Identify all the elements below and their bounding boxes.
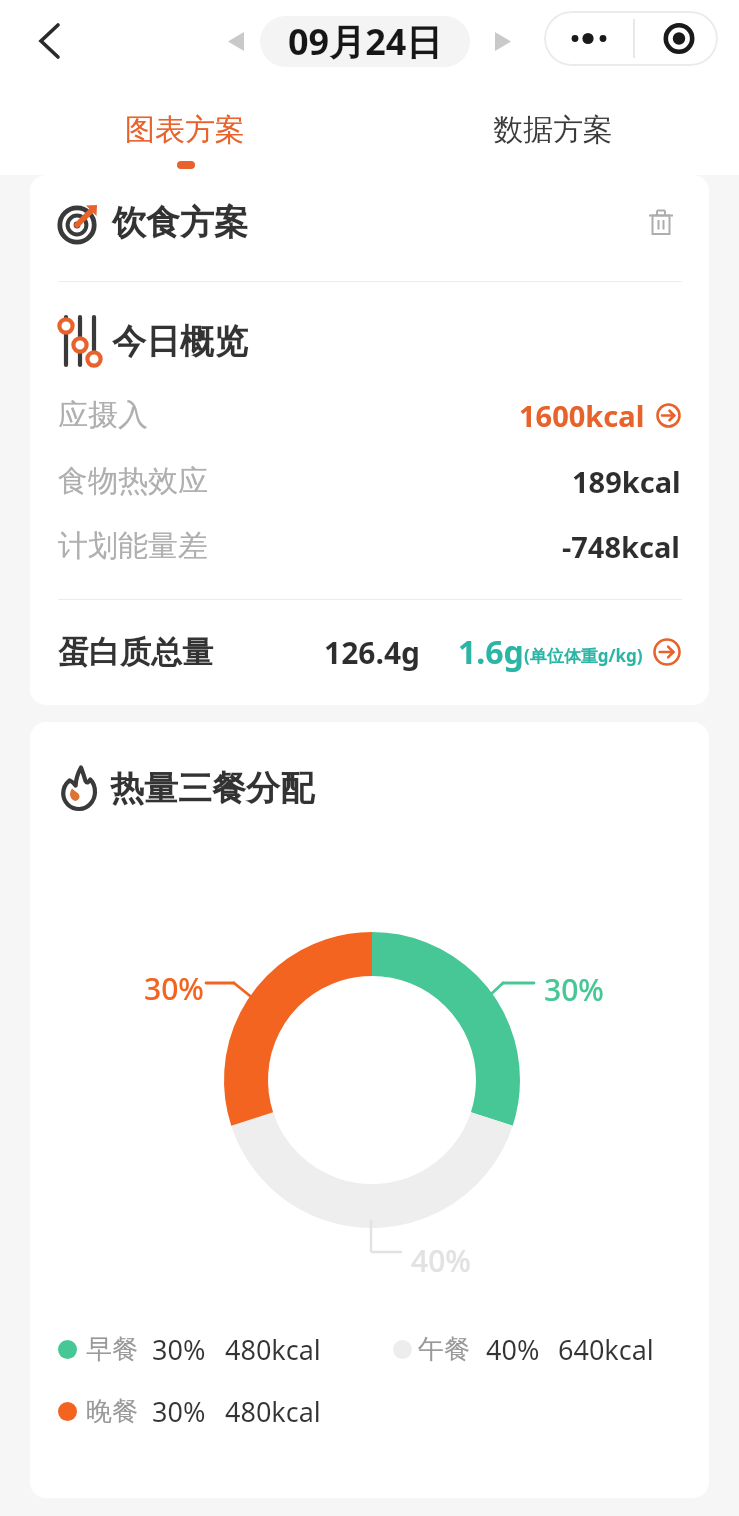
- staticText: 应摄入: [58, 396, 148, 434]
- staticText: 蛋白质总量: [58, 633, 213, 672]
- staticText: 计划能量差: [58, 527, 208, 565]
- button[interactable]: 应摄入: [58, 390, 681, 440]
- staticText: 189kcal: [572, 462, 681, 501]
- button[interactable]: 图表方案: [65, 103, 305, 157]
- staticText: 480kcal: [225, 1331, 321, 1367]
- staticText: 图表方案: [125, 111, 245, 149]
- staticText: (单位体重g/kg): [524, 644, 643, 667]
- staticText: 午餐: [418, 1333, 470, 1366]
- button[interactable]: [544, 11, 631, 66]
- staticText: 热量三餐分配: [110, 767, 314, 810]
- button[interactable]: [28, 14, 72, 68]
- staticText: -748kcal: [562, 527, 681, 566]
- button[interactable]: [495, 32, 511, 51]
- staticText: 1.6g: [458, 630, 524, 674]
- staticText: 早餐: [86, 1333, 138, 1366]
- button[interactable]: [228, 32, 244, 51]
- button[interactable]: 数据方案: [433, 103, 673, 157]
- staticText: 126.4g: [324, 632, 421, 673]
- staticText: 480kcal: [225, 1393, 321, 1429]
- staticText: 30%: [152, 1393, 206, 1429]
- staticText: 今日概览: [112, 320, 248, 363]
- button[interactable]: [641, 202, 681, 242]
- staticText: 40%: [411, 1240, 471, 1281]
- staticText: 30%: [544, 969, 604, 1010]
- staticText: 饮食方案: [112, 201, 248, 244]
- staticText: 1600kcal: [519, 396, 645, 435]
- staticText: 30%: [152, 1331, 206, 1367]
- staticText: 40%: [486, 1331, 540, 1367]
- staticText: 数据方案: [493, 111, 613, 149]
- button[interactable]: 09月24日: [260, 16, 470, 67]
- staticText: 09月24日: [288, 17, 443, 66]
- button[interactable]: 蛋白质总量: [58, 627, 681, 677]
- staticText: 640kcal: [558, 1331, 654, 1367]
- staticText: 食物热效应: [58, 462, 208, 500]
- staticText: 30%: [144, 968, 204, 1009]
- button[interactable]: [631, 11, 718, 66]
- staticText: 晚餐: [86, 1395, 138, 1428]
